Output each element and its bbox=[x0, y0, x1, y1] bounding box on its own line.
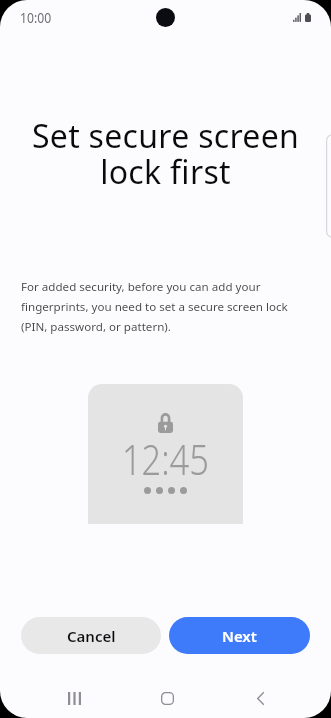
staticText: Cancel bbox=[67, 626, 116, 646]
staticText: 10:00 bbox=[20, 8, 51, 27]
staticText: Set secure screen lock first bbox=[16, 114, 315, 194]
staticText: 12:45 bbox=[122, 429, 209, 488]
button[interactable]: Home bbox=[144, 681, 190, 715]
staticText: Next bbox=[222, 626, 257, 646]
button[interactable]: Back bbox=[237, 681, 283, 715]
button[interactable]: Recents bbox=[51, 681, 97, 715]
button[interactable]: Cancel bbox=[21, 617, 161, 654]
button[interactable]: Next bbox=[169, 617, 310, 654]
staticText: For added security, before you can add y… bbox=[21, 279, 311, 335]
